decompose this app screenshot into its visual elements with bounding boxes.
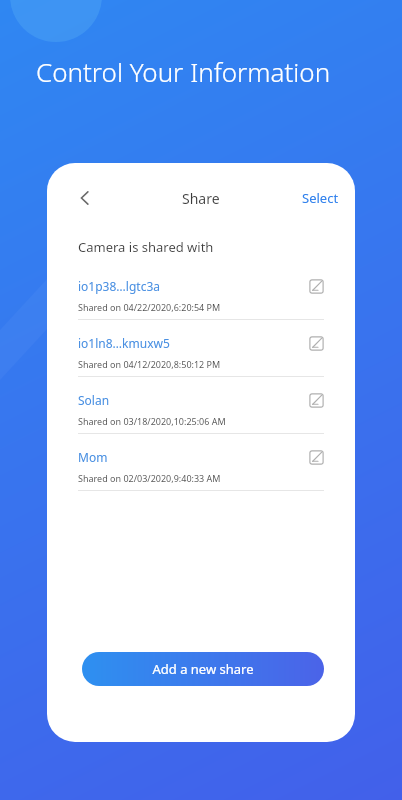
- staticText: Shared on 04/12/2020,8:50:12 PM: [78, 358, 221, 370]
- staticText: Camera is shared with: [78, 238, 214, 256]
- other: Edit share: [308, 449, 324, 465]
- button[interactable]: io1ln8…kmuxw5: [47, 333, 355, 376]
- staticText: io1p38…lgtc3a: [78, 278, 160, 294]
- staticText: Add a new share: [152, 660, 254, 678]
- button[interactable]: io1p38…lgtc3a: [47, 276, 355, 319]
- button[interactable]: Back: [65, 178, 105, 218]
- other: Edit share: [308, 392, 324, 408]
- staticText: Shared on 02/03/2020,9:40:33 AM: [78, 472, 221, 484]
- other: Edit share: [308, 278, 324, 294]
- staticText: Share: [182, 189, 220, 208]
- button[interactable]: Solan: [47, 390, 355, 433]
- staticText: io1ln8…kmuxw5: [78, 335, 170, 351]
- staticText: Shared on 04/22/2020,6:20:54 PM: [78, 301, 221, 313]
- button[interactable]: Select: [286, 179, 355, 217]
- staticText: Solan: [78, 392, 110, 408]
- button[interactable]: Add a new share: [82, 652, 324, 686]
- other: Edit share: [308, 335, 324, 351]
- staticText: Shared on 03/18/2020,10:25:06 AM: [78, 415, 226, 427]
- staticText: Select: [302, 189, 339, 207]
- button[interactable]: Mom: [47, 447, 355, 490]
- staticText: Control Your Information: [36, 54, 331, 89]
- staticText: Mom: [78, 449, 108, 465]
